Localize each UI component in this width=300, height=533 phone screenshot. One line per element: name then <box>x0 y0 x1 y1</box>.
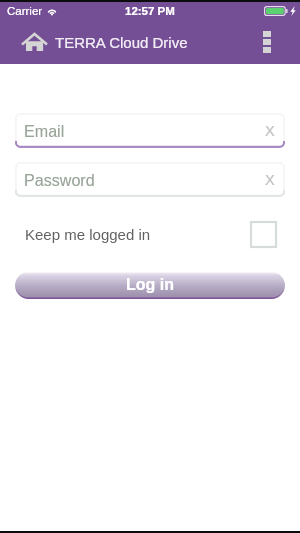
button[interactable]: More options <box>247 20 287 64</box>
staticText: Password <box>24 171 95 189</box>
button[interactable]: Password <box>15 162 285 197</box>
staticText: Email <box>24 122 65 140</box>
staticText: X <box>265 123 275 139</box>
staticText: Log in <box>126 276 174 294</box>
button[interactable]: Home <box>18 26 51 59</box>
staticText: 12:57 PM <box>125 5 175 18</box>
staticText: Carrier <box>7 5 43 18</box>
staticText: X <box>265 172 275 188</box>
button[interactable]: Keep me logged in <box>0 220 300 249</box>
staticText: Keep me logged in <box>25 226 151 243</box>
staticText: TERRA Cloud Drive <box>55 34 188 51</box>
button[interactable]: Log in <box>15 272 285 299</box>
button[interactable]: Email <box>15 113 285 148</box>
